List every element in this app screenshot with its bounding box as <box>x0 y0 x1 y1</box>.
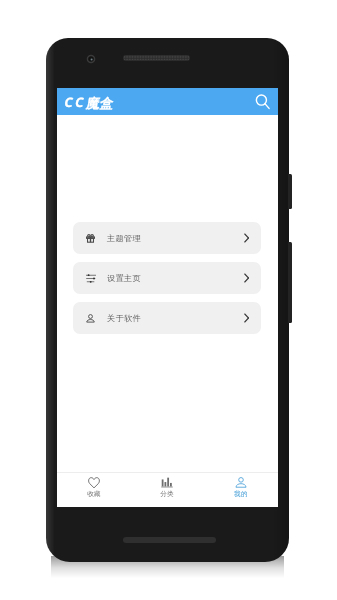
staticText: 关于软件 <box>107 313 142 323</box>
button[interactable]: 设置主页 <box>73 262 261 294</box>
button[interactable]: 关于软件 <box>73 302 261 334</box>
staticText: 设置主页 <box>107 273 142 283</box>
button[interactable]: 主题管理 <box>73 222 261 254</box>
staticText: 主题管理 <box>107 233 142 243</box>
staticText: 分类 <box>160 490 174 498</box>
button[interactable]: Search <box>255 94 271 110</box>
button[interactable]: 收藏 <box>57 473 130 507</box>
staticText: 收藏 <box>87 490 101 498</box>
button[interactable]: 分类 <box>130 473 204 507</box>
staticText: 我的 <box>234 490 248 498</box>
button[interactable]: 我的 <box>204 473 278 507</box>
